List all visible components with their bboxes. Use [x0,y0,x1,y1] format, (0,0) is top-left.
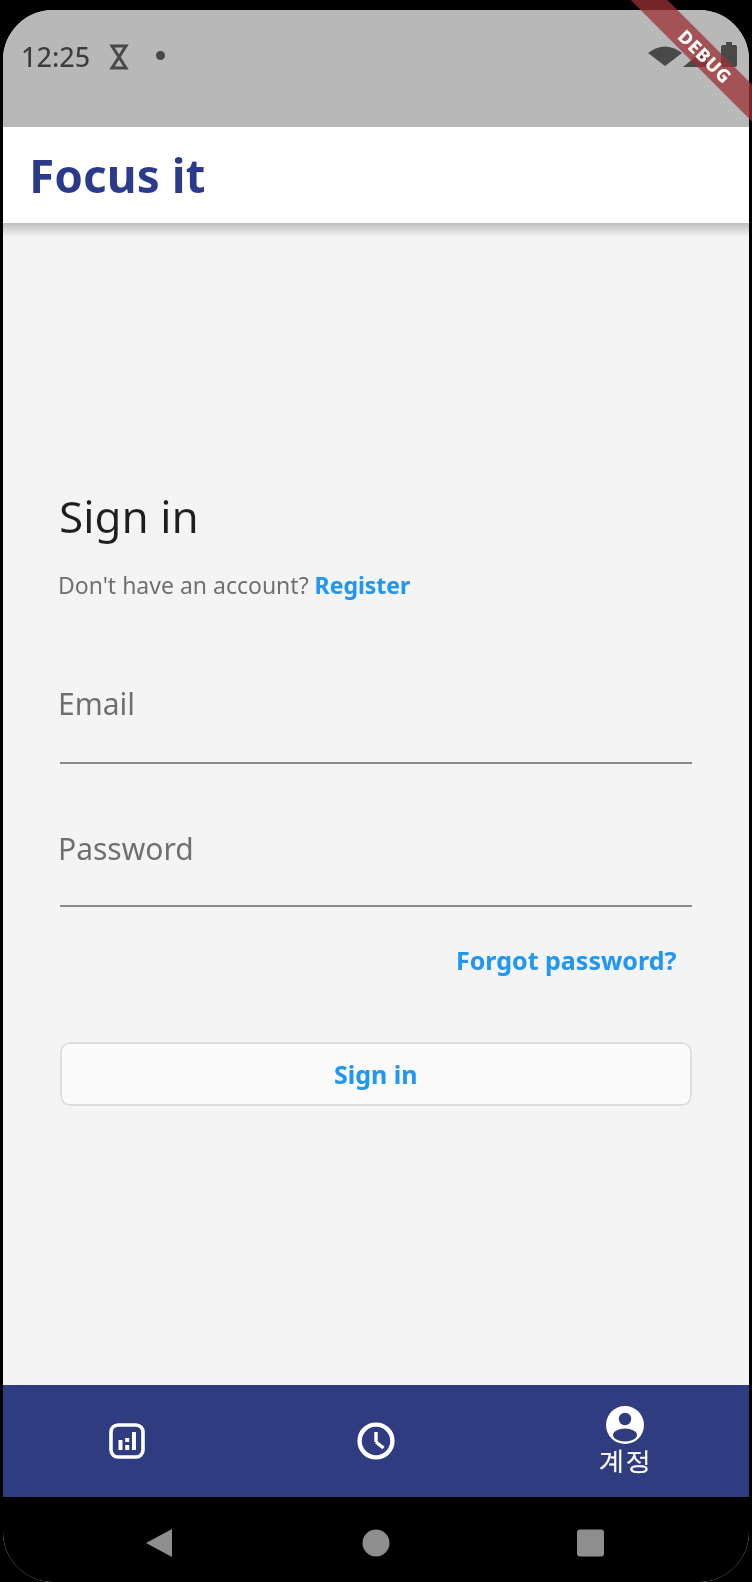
staticText: Email [58,683,136,724]
button[interactable]: Forgot password? [456,943,677,977]
button[interactable] [251,1385,500,1497]
staticText: 계정 [599,1445,651,1478]
staticText: Password [58,828,194,869]
button[interactable] [3,1385,251,1497]
button[interactable]: Don't have an account? Register [58,569,411,600]
button[interactable]: 계정 [500,1385,749,1497]
staticText: Focus it [29,144,206,207]
button[interactable]: Sign in [60,1042,692,1106]
staticText: Sign in [334,1057,418,1091]
staticText: DEBUG [672,24,738,89]
staticText: 12:25 [21,38,91,75]
staticText: Sign in [59,486,199,546]
